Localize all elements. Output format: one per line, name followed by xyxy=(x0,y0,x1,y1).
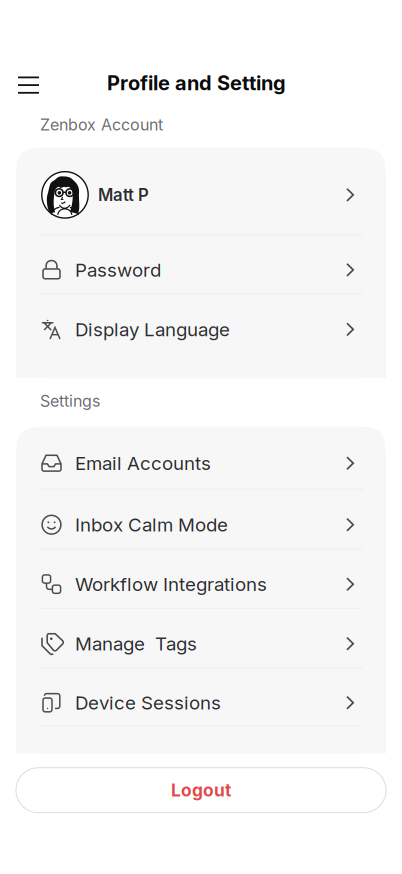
button[interactable]: Logout xyxy=(16,768,386,813)
staticText: Profile and Setting xyxy=(107,71,286,95)
button[interactable]: Password xyxy=(16,235,386,294)
button[interactable]: Display Language xyxy=(16,294,386,353)
button[interactable]: Menu xyxy=(0,63,51,102)
button[interactable]: Email Accounts xyxy=(16,427,386,490)
staticText: Logout xyxy=(171,780,231,801)
button[interactable]: Inbox Calm Mode xyxy=(16,490,386,550)
staticText: Zenbox Account xyxy=(40,115,163,134)
staticText: Matt P xyxy=(98,185,149,205)
button[interactable]: Manage Tags xyxy=(16,609,386,669)
staticText: Password xyxy=(75,259,161,281)
staticText: Workflow Integrations xyxy=(75,573,267,595)
button[interactable]: Workflow Integrations xyxy=(16,550,386,609)
staticText: Inbox Calm Mode xyxy=(75,513,228,536)
staticText: Display Language xyxy=(75,318,230,341)
button[interactable]: Matt P xyxy=(16,147,386,235)
staticText: Device Sessions xyxy=(75,691,221,714)
staticText: Manage Tags xyxy=(75,632,197,655)
staticText: Email Accounts xyxy=(75,452,211,474)
button[interactable]: Device Sessions xyxy=(16,669,386,727)
staticText: Settings xyxy=(40,391,100,411)
